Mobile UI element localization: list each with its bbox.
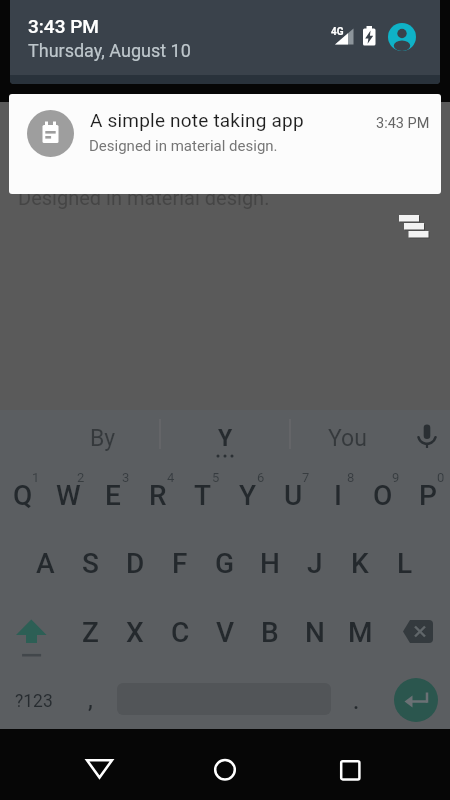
staticText: P bbox=[419, 479, 437, 512]
staticText: L bbox=[397, 547, 413, 580]
button[interactable]: By bbox=[68, 418, 138, 458]
button[interactable]: L bbox=[383, 531, 427, 595]
staticText: K bbox=[351, 547, 369, 580]
button[interactable]: G bbox=[203, 531, 247, 595]
button[interactable]: T bbox=[181, 463, 225, 527]
button[interactable]: V bbox=[203, 600, 247, 664]
button[interactable]: D bbox=[113, 531, 157, 595]
staticText: O bbox=[373, 479, 393, 512]
button[interactable]: E bbox=[91, 463, 135, 527]
staticText: U bbox=[284, 479, 303, 512]
staticText: Thursday, August 10 bbox=[28, 40, 191, 61]
staticText: A simple note taking app bbox=[90, 109, 304, 131]
staticText: F bbox=[172, 547, 188, 580]
staticText: D bbox=[126, 547, 145, 580]
staticText: 2 bbox=[77, 470, 85, 485]
button[interactable]: J bbox=[293, 531, 337, 595]
staticText: H bbox=[260, 547, 280, 580]
staticText: S bbox=[82, 547, 99, 580]
button[interactable]: K bbox=[338, 531, 382, 595]
staticText: T bbox=[194, 479, 212, 512]
staticText: A bbox=[36, 547, 55, 580]
button[interactable]: Q bbox=[1, 463, 45, 527]
staticText: 3:43 PM bbox=[376, 115, 430, 132]
button[interactable]: A bbox=[23, 531, 67, 595]
button[interactable] bbox=[398, 614, 440, 650]
button[interactable]: , bbox=[68, 675, 112, 727]
staticText: R bbox=[149, 479, 167, 512]
staticText: 4 bbox=[167, 470, 175, 485]
button[interactable] bbox=[388, 23, 416, 51]
staticText: 1 bbox=[32, 470, 40, 485]
button[interactable]: B bbox=[248, 600, 292, 664]
button[interactable] bbox=[328, 751, 372, 787]
button[interactable]: W bbox=[46, 463, 90, 527]
button[interactable]: R bbox=[136, 463, 180, 527]
button[interactable]: H bbox=[248, 531, 292, 595]
staticText: 0 bbox=[437, 470, 445, 485]
staticText: 6 bbox=[257, 470, 265, 485]
staticText: 8 bbox=[347, 470, 355, 485]
button[interactable] bbox=[203, 751, 247, 787]
button[interactable]: X bbox=[113, 600, 157, 664]
staticText: G bbox=[215, 547, 235, 580]
staticText: Y bbox=[218, 425, 233, 452]
staticText: I bbox=[334, 479, 342, 512]
staticText: W bbox=[56, 479, 81, 512]
staticText: J bbox=[307, 547, 323, 580]
staticText: C bbox=[171, 616, 190, 649]
button[interactable]: You bbox=[312, 418, 382, 458]
button[interactable]: N bbox=[293, 600, 337, 664]
staticText: You bbox=[328, 425, 367, 452]
button[interactable]: F bbox=[158, 531, 202, 595]
button[interactable]: Y bbox=[226, 463, 270, 527]
staticText: ?123 bbox=[15, 691, 53, 712]
button[interactable]: M bbox=[338, 600, 382, 664]
staticText: N bbox=[305, 616, 325, 649]
button[interactable]: I bbox=[316, 463, 360, 527]
button[interactable] bbox=[14, 614, 50, 660]
staticText: Y bbox=[239, 479, 257, 512]
staticText: 3 bbox=[122, 470, 130, 485]
staticText: V bbox=[216, 616, 235, 649]
staticText: X bbox=[126, 616, 144, 649]
staticText: E bbox=[105, 479, 121, 512]
button[interactable]: A simple note taking app bbox=[9, 94, 441, 194]
button[interactable] bbox=[76, 751, 124, 787]
staticText: 4G bbox=[331, 26, 344, 38]
button[interactable]: Y bbox=[190, 418, 260, 458]
button[interactable] bbox=[394, 678, 438, 722]
button[interactable]: Z bbox=[68, 600, 112, 664]
staticText: Z bbox=[82, 616, 99, 649]
staticText: B bbox=[261, 616, 279, 649]
button[interactable]: C bbox=[158, 600, 202, 664]
staticText: M bbox=[348, 616, 373, 649]
button[interactable]: O bbox=[361, 463, 405, 527]
button[interactable] bbox=[405, 415, 449, 455]
button[interactable]: ?123 bbox=[4, 677, 64, 725]
staticText: Q bbox=[13, 479, 33, 512]
staticText: 7 bbox=[302, 470, 310, 485]
staticText: Designed in material design. bbox=[89, 137, 278, 155]
button[interactable]: P bbox=[406, 463, 450, 527]
staticText: , bbox=[88, 688, 93, 714]
button[interactable]: U bbox=[271, 463, 315, 527]
staticText: 5 bbox=[212, 470, 220, 485]
staticText: By bbox=[90, 425, 116, 452]
staticText: 3:43 PM bbox=[28, 15, 99, 37]
staticText: . bbox=[353, 689, 360, 715]
staticText: Designed in material design. bbox=[18, 186, 270, 209]
button[interactable]: S bbox=[68, 531, 112, 595]
staticText: 9 bbox=[392, 470, 400, 485]
